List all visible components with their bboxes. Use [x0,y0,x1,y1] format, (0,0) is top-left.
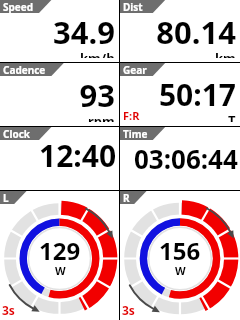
button[interactable]: Clock [0,127,119,190]
button[interactable]: 129 [0,191,119,320]
staticText: L [3,191,9,204]
staticText: 34.9 [53,11,115,53]
staticText: km/h [80,49,115,58]
staticText: Clock [3,127,31,140]
staticText: 50:17 [158,74,236,115]
staticText: R [123,191,130,204]
button[interactable]: Dist [120,0,240,62]
button[interactable]: Speed [0,0,119,62]
staticText: 156 [159,234,201,267]
staticText: Dist [123,0,143,13]
staticText: Time [123,127,148,140]
staticText: 3s [122,302,135,318]
staticText: 03:06:44 [134,141,238,176]
staticText: W [55,263,66,278]
staticText: 93 [79,74,115,116]
button[interactable]: 156 [120,191,240,320]
staticText: 80.14 [156,11,236,53]
staticText: rpm [88,112,115,122]
button[interactable]: Time [120,127,240,190]
staticText: 12:40 [39,135,117,176]
staticText: Cadence [3,63,46,76]
staticText: F:R [123,108,140,123]
button[interactable]: Cadence [0,63,119,126]
other: Right pedal power gauge [120,191,240,320]
staticText: Speed [3,0,34,13]
staticText: 3s [2,302,15,318]
staticText: W [175,263,186,278]
staticText: km [215,49,236,58]
staticText: 129 [39,234,81,267]
button[interactable]: Gear [120,63,240,126]
other: Left pedal power gauge [0,191,119,320]
staticText: T [228,111,236,122]
staticText: Gear [123,63,147,76]
